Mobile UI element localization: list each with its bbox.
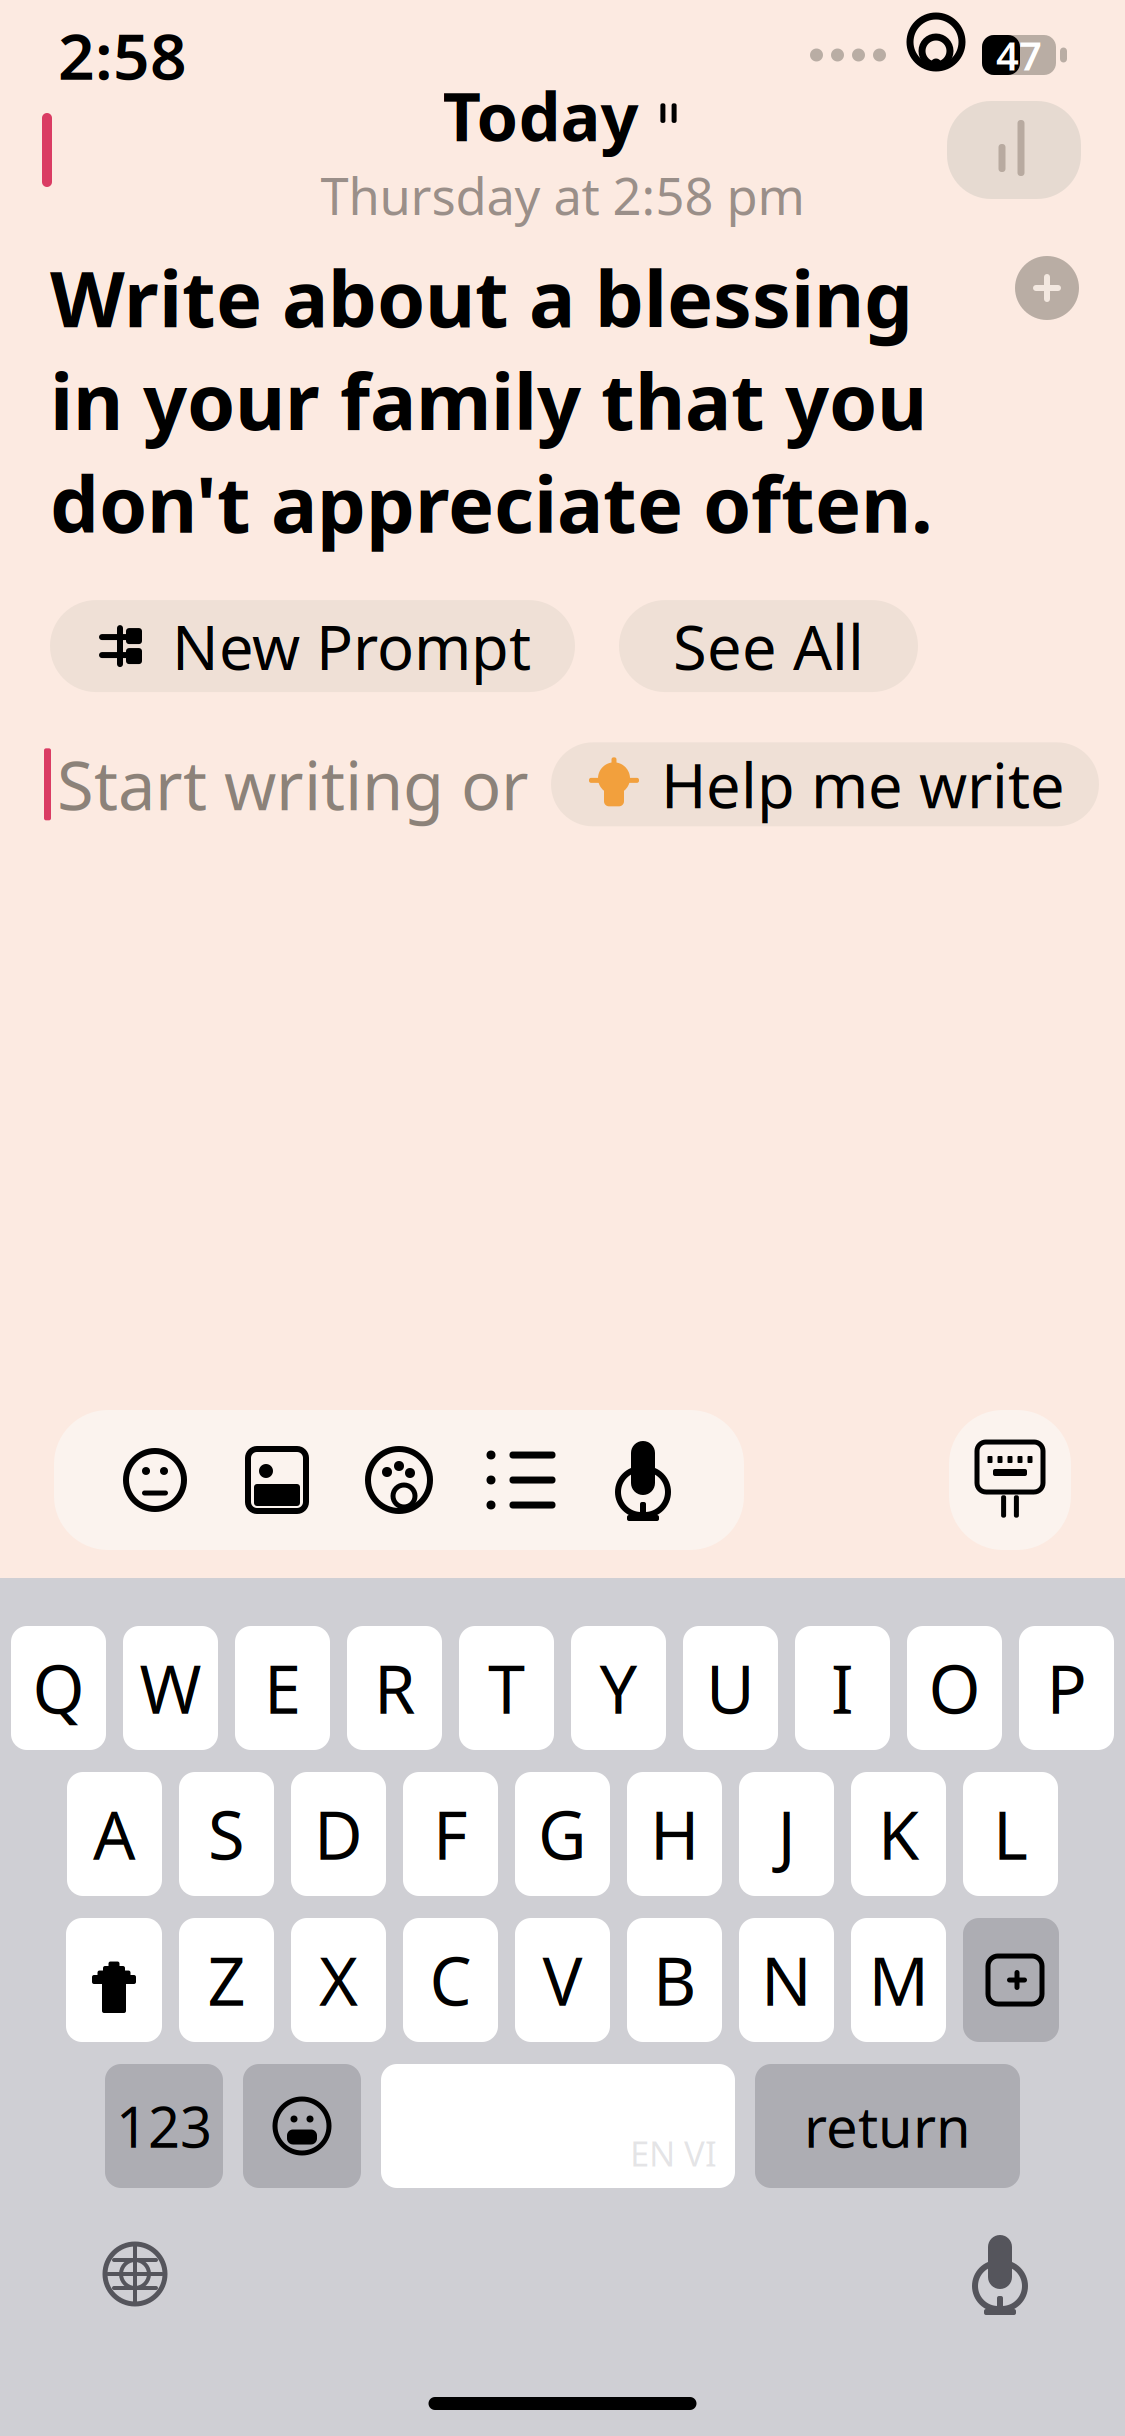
button[interactable]: D [291,1772,386,1896]
staticText: F [433,1790,468,1878]
button[interactable]: C [403,1918,498,2042]
staticText: Q [32,1644,84,1732]
staticText: Help me write [661,744,1065,825]
button[interactable]: A [67,1772,162,1896]
button[interactable]: V [515,1918,610,2042]
button[interactable]: Space [381,2064,735,2188]
button[interactable]: I [795,1626,890,1750]
button[interactable]: Drawing [338,1410,460,1550]
staticText: C [429,1936,471,2024]
button[interactable]: See All [619,600,918,692]
button[interactable]: K [851,1772,946,1896]
staticText: B [653,1936,696,2024]
staticText: N [761,1936,812,2024]
button[interactable]: Emoji [94,1410,216,1550]
button[interactable]: T [459,1626,554,1750]
button[interactable]: G [515,1772,610,1896]
button[interactable]: L [963,1772,1058,1896]
button[interactable]: S [179,1772,274,1896]
staticText: T [488,1644,525,1732]
button[interactable]: W [123,1626,218,1750]
staticText: L [993,1790,1028,1878]
staticText: J [777,1790,795,1878]
button[interactable]: Back [0,96,104,204]
staticText: R [374,1644,415,1732]
button[interactable]: P [1019,1626,1114,1750]
staticText: Start writing or [57,740,529,829]
button[interactable]: Add photo [216,1410,338,1550]
button[interactable]: R [347,1626,442,1750]
staticText: P [1046,1644,1086,1732]
button[interactable]: Checklist [460,1410,582,1550]
staticText: K [878,1790,919,1878]
staticText: 2:58 [58,12,187,97]
button[interactable]: Dismiss prompt [1015,246,1079,320]
staticText: O [928,1644,980,1732]
button[interactable]: Done [947,101,1125,199]
staticText: Y [599,1644,637,1732]
button[interactable]: F [403,1772,498,1896]
staticText: S [208,1790,245,1878]
staticText: I [831,1644,854,1732]
staticText: M [868,1936,928,2024]
button[interactable]: M [851,1918,946,2042]
button[interactable]: B [627,1918,722,2042]
button[interactable]: 123 [105,2064,223,2188]
staticText: Write about a blessing in your family th… [50,246,933,554]
button[interactable]: Next keyboard [84,2223,186,2325]
staticText: 123 [116,2089,212,2163]
button[interactable]: Shift [66,1918,162,2042]
staticText: A [93,1790,136,1878]
button[interactable]: Y [571,1626,666,1750]
staticText: Today [442,71,638,160]
staticText: G [538,1790,587,1878]
staticText: H [650,1790,699,1878]
staticText: 47 [996,28,1042,81]
button[interactable]: Help me write [551,742,1099,826]
button[interactable]: Z [179,1918,274,2042]
button[interactable]: O [907,1626,1002,1750]
button[interactable]: Dictate [959,2218,1041,2330]
staticText: W [139,1644,201,1732]
button[interactable]: X [291,1918,386,2042]
staticText: D [314,1790,363,1878]
button[interactable]: Delete [963,1918,1059,2042]
staticText: See All [673,605,864,687]
staticText: Thursday at 2:58 pm [320,162,804,229]
button[interactable]: H [627,1772,722,1896]
staticText: return [804,2089,971,2163]
button[interactable]: N [739,1918,834,2042]
staticText: V [542,1936,582,2024]
button[interactable]: Today [442,71,682,160]
staticText: EN VI [630,2130,717,2176]
staticText: X [319,1936,358,2024]
staticText: E [264,1644,301,1732]
staticText: New Prompt [172,605,531,687]
button[interactable]: U [683,1626,778,1750]
button[interactable]: Hide keyboard [949,1410,1071,1550]
button[interactable]: J [739,1772,834,1896]
button[interactable]: Record audio [582,1410,704,1550]
staticText: U [706,1644,755,1732]
button[interactable]: E [235,1626,330,1750]
button[interactable]: Q [11,1626,106,1750]
staticText: Z [207,1936,245,2024]
button[interactable]: Emoji [243,2064,361,2188]
button[interactable]: return [755,2064,1020,2188]
button[interactable]: New Prompt [50,600,575,692]
